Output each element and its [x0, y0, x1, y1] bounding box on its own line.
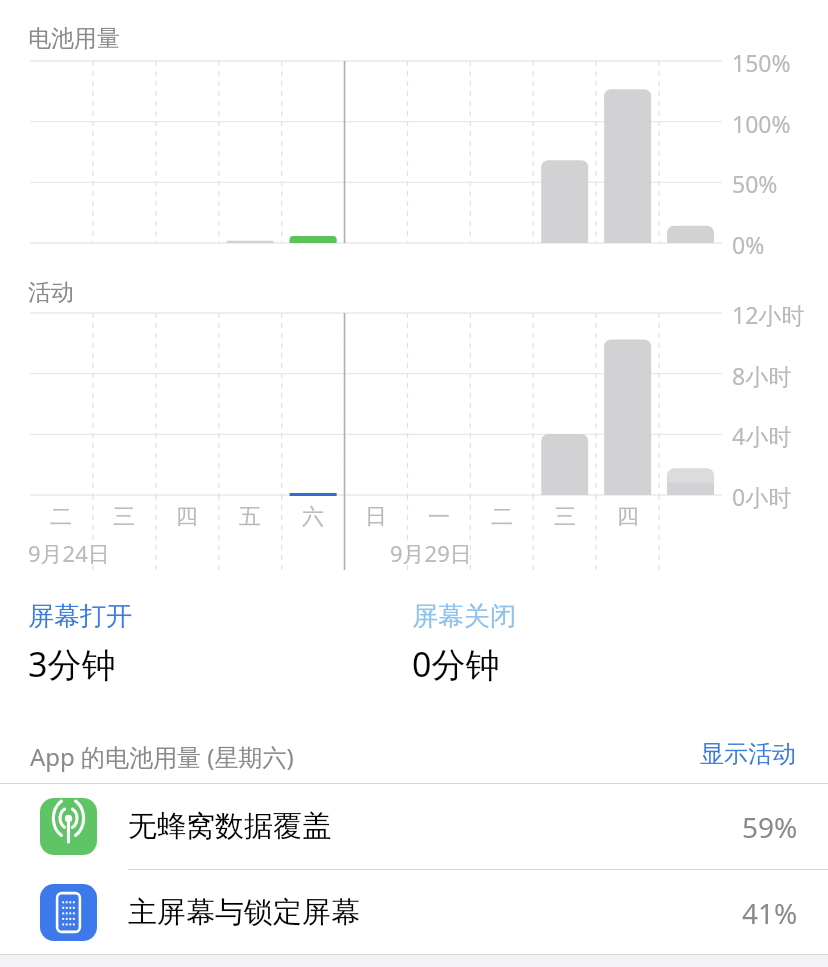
staticText: 无蜂窝数据覆盖 [128, 808, 331, 845]
staticText: 电池用量 [28, 24, 120, 53]
staticText: 4小时 [732, 420, 792, 451]
button[interactable]: No cellular coverage [0, 784, 828, 869]
staticText: 12小时 [732, 299, 805, 330]
staticText: 四 [162, 503, 212, 531]
staticText: 屏幕关闭 [412, 600, 516, 633]
staticText: 二 [36, 503, 86, 531]
button[interactable]: Home and lock screen [0, 870, 828, 955]
staticText: 三 [99, 503, 149, 531]
staticText: 显示活动 [700, 739, 796, 769]
staticText: 0% [732, 229, 765, 260]
staticText: 50% [732, 168, 778, 199]
staticText: 0分钟 [412, 641, 500, 687]
staticText: 一 [414, 503, 464, 531]
staticText: 8小时 [732, 360, 792, 391]
staticText: 活动 [28, 278, 74, 307]
staticText: 三 [540, 503, 590, 531]
staticText: 100% [732, 108, 791, 139]
staticText: 四 [603, 503, 653, 531]
staticText: 日 [351, 503, 401, 531]
staticText: 屏幕打开 [28, 600, 132, 633]
staticText: 主屏幕与锁定屏幕 [128, 894, 360, 931]
staticText: 41% [742, 894, 798, 932]
staticText: 9月24日 [28, 538, 110, 568]
staticText: App 的电池用量 (星期六) [30, 740, 294, 773]
staticText: 150% [732, 47, 791, 78]
button[interactable]: 显示活动 [698, 735, 798, 773]
staticText: 59% [742, 808, 798, 846]
staticText: 0小时 [732, 481, 792, 512]
other: Home and lock screen [40, 884, 97, 941]
other: No cellular coverage [40, 798, 97, 855]
staticText: 3分钟 [28, 641, 116, 687]
staticText: 六 [288, 503, 338, 531]
staticText: 五 [225, 503, 275, 531]
staticText: 9月29日 [390, 538, 472, 568]
staticText: 二 [477, 503, 527, 531]
